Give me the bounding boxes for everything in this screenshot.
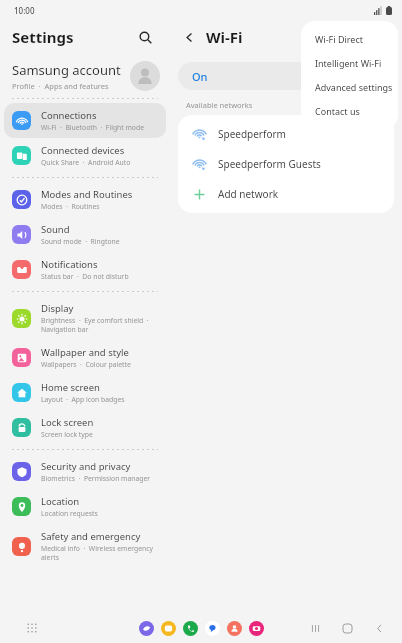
button[interactable]: Wallpaper and style <box>4 340 166 375</box>
staticText: Connected devices <box>41 144 125 157</box>
button[interactable]: Advanced settings <box>301 75 398 99</box>
button[interactable]: messages <box>205 621 220 636</box>
staticText: Safety and emergency <box>41 530 141 543</box>
button[interactable]: Speedperform <box>178 119 394 149</box>
staticText: Modes · Routines <box>41 202 100 211</box>
staticText: Modes and Routines <box>41 188 133 201</box>
staticText: Notifications <box>41 258 98 271</box>
staticText: Available networks <box>186 100 253 110</box>
staticText: Location requests <box>41 509 98 518</box>
staticText: Medical info · Wireless emergency alerts <box>41 544 153 562</box>
button[interactable]: camera <box>249 621 264 636</box>
button[interactable]: Back <box>178 26 200 48</box>
staticText: Samsung account <box>12 61 121 79</box>
staticText: On <box>192 69 208 84</box>
staticText: Home screen <box>41 381 100 394</box>
button[interactable]: Add network <box>178 179 394 209</box>
staticText: Brightness · Eye comfort shield · Naviga… <box>41 316 149 334</box>
staticText: Lock screen <box>41 416 94 429</box>
button[interactable]: Display <box>4 296 166 340</box>
button[interactable]: Intelligent Wi-Fi <box>301 51 398 75</box>
staticText: Sound mode · Ringtone <box>41 237 120 246</box>
staticText: Status bar · Do not disturb <box>41 272 129 281</box>
button[interactable]: Safety and emergency <box>4 524 166 568</box>
staticText: Biometrics · Permission manager <box>41 474 151 483</box>
staticText: Wi-Fi Direct <box>315 33 363 45</box>
button[interactable]: Samsung account <box>0 54 170 98</box>
button[interactable]: Search <box>134 26 156 48</box>
button[interactable]: Security and privacy <box>4 454 166 489</box>
staticText: Wi-Fi · Bluetooth · Flight mode <box>41 123 144 132</box>
button[interactable]: Back <box>370 619 388 637</box>
button[interactable]: gallery <box>161 621 176 636</box>
button[interactable]: Lock screen <box>4 410 166 445</box>
button[interactable]: Contact us <box>301 99 398 123</box>
button[interactable]: phone <box>183 621 198 636</box>
button[interactable]: contacts <box>227 621 242 636</box>
staticText: Wallpaper and style <box>41 346 129 359</box>
button[interactable]: Recents <box>306 619 324 637</box>
staticText: Layout · App icon badges <box>41 395 125 404</box>
staticText: Contact us <box>315 105 360 117</box>
button[interactable]: Modes and Routines <box>4 182 166 217</box>
button[interactable]: Connected devices <box>4 138 166 173</box>
staticText: Profile · Apps and features <box>12 81 109 91</box>
button[interactable]: Sound <box>4 217 166 252</box>
button[interactable]: Speedperform Guests <box>178 149 394 179</box>
button[interactable]: Connections <box>4 103 166 138</box>
button[interactable]: Notifications <box>4 252 166 287</box>
button[interactable]: Home screen <box>4 375 166 410</box>
staticText: Speedperform Guests <box>218 157 321 171</box>
button[interactable]: Wi-Fi Direct <box>301 27 398 51</box>
staticText: Security and privacy <box>41 460 131 473</box>
button[interactable]: Location <box>4 489 166 524</box>
staticText: Quick Share · Android Auto <box>41 158 131 167</box>
button[interactable]: internet <box>139 621 154 636</box>
staticText: Wi-Fi <box>206 27 243 47</box>
staticText: Advanced settings <box>315 81 393 93</box>
button[interactable]: Apps <box>22 618 42 638</box>
staticText: Location <box>41 495 80 508</box>
staticText: Sound <box>41 223 70 236</box>
button[interactable]: Home <box>338 619 356 637</box>
staticText: Display <box>41 302 74 315</box>
staticText: Speedperform <box>218 127 286 141</box>
staticText: Wallpapers · Colour palette <box>41 360 131 369</box>
staticText: Add network <box>218 187 279 201</box>
button[interactable]: On <box>178 62 394 90</box>
staticText: Screen lock type <box>41 430 93 439</box>
staticText: Settings <box>12 27 74 47</box>
staticText: 10:00 <box>14 5 35 16</box>
staticText: Connections <box>41 109 97 122</box>
staticText: Intelligent Wi-Fi <box>315 57 382 69</box>
